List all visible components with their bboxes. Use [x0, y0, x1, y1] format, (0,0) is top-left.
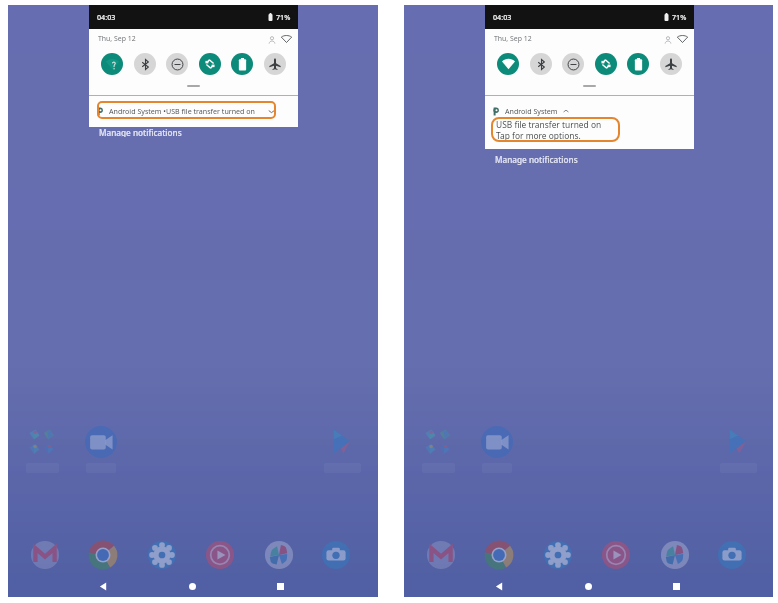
- button[interactable]: App: [542, 539, 574, 571]
- staticText: 71%: [276, 12, 291, 22]
- button[interactable]: Android System •USB file transfer turned…: [89, 100, 298, 122]
- button[interactable]: User: [266, 34, 277, 45]
- button[interactable]: App: [317, 425, 367, 477]
- staticText: Android System •USB file transfer turned…: [109, 106, 255, 116]
- button[interactable]: App: [659, 539, 691, 571]
- button[interactable]: Auto-rotate: [595, 53, 617, 75]
- button[interactable]: Back: [92, 575, 114, 597]
- button[interactable]: Bluetooth: [134, 53, 156, 75]
- button[interactable]: Bluetooth: [530, 53, 552, 75]
- button[interactable]: Airplane mode: [264, 53, 286, 75]
- button[interactable]: App: [204, 539, 236, 571]
- button[interactable]: Home: [577, 575, 599, 597]
- staticText: Tap for more options.: [496, 130, 581, 141]
- button[interactable]: Battery saver: [231, 53, 253, 75]
- button[interactable]: App: [146, 539, 178, 571]
- button[interactable]: App: [716, 539, 748, 571]
- button[interactable]: App: [87, 539, 119, 571]
- button[interactable]: App: [320, 539, 352, 571]
- button[interactable]: App: [29, 539, 61, 571]
- staticText: Thu, Sep 12: [494, 34, 532, 43]
- button[interactable]: Home: [181, 575, 203, 597]
- button[interactable]: Battery saver: [627, 53, 649, 75]
- button[interactable]: App: [483, 539, 515, 571]
- button[interactable]: Back: [488, 575, 510, 597]
- staticText: USB file transfer turned on: [496, 119, 602, 130]
- button[interactable]: Recents: [665, 575, 687, 597]
- button[interactable]: Do not disturb: [562, 53, 584, 75]
- button[interactable]: Android System: [485, 96, 694, 149]
- button[interactable]: App: [263, 539, 295, 571]
- button[interactable]: Wi-Fi: [101, 53, 123, 75]
- button[interactable]: Settings: [676, 33, 688, 45]
- button[interactable]: App: [472, 425, 522, 477]
- button[interactable]: Do not disturb: [166, 53, 188, 75]
- button[interactable]: App: [17, 425, 67, 477]
- staticText: Android System: [505, 106, 558, 116]
- button[interactable]: Airplane mode: [660, 53, 682, 75]
- button[interactable]: Manage notifications: [495, 154, 578, 165]
- button[interactable]: App: [76, 425, 126, 477]
- button[interactable]: App: [713, 425, 763, 477]
- staticText: 04:03: [97, 12, 116, 22]
- staticText: 71%: [672, 12, 687, 22]
- button[interactable]: Manage notifications: [99, 127, 182, 137]
- staticText: Thu, Sep 12: [98, 34, 136, 43]
- button[interactable]: Auto-rotate: [199, 53, 221, 75]
- button[interactable]: App: [413, 425, 463, 477]
- button[interactable]: App: [425, 539, 457, 571]
- button[interactable]: Recents: [269, 575, 291, 597]
- button[interactable]: User: [662, 34, 673, 45]
- button[interactable]: App: [600, 539, 632, 571]
- button[interactable]: Wi-Fi: [497, 53, 519, 75]
- button[interactable]: Settings: [280, 33, 292, 45]
- staticText: 04:03: [493, 12, 512, 22]
